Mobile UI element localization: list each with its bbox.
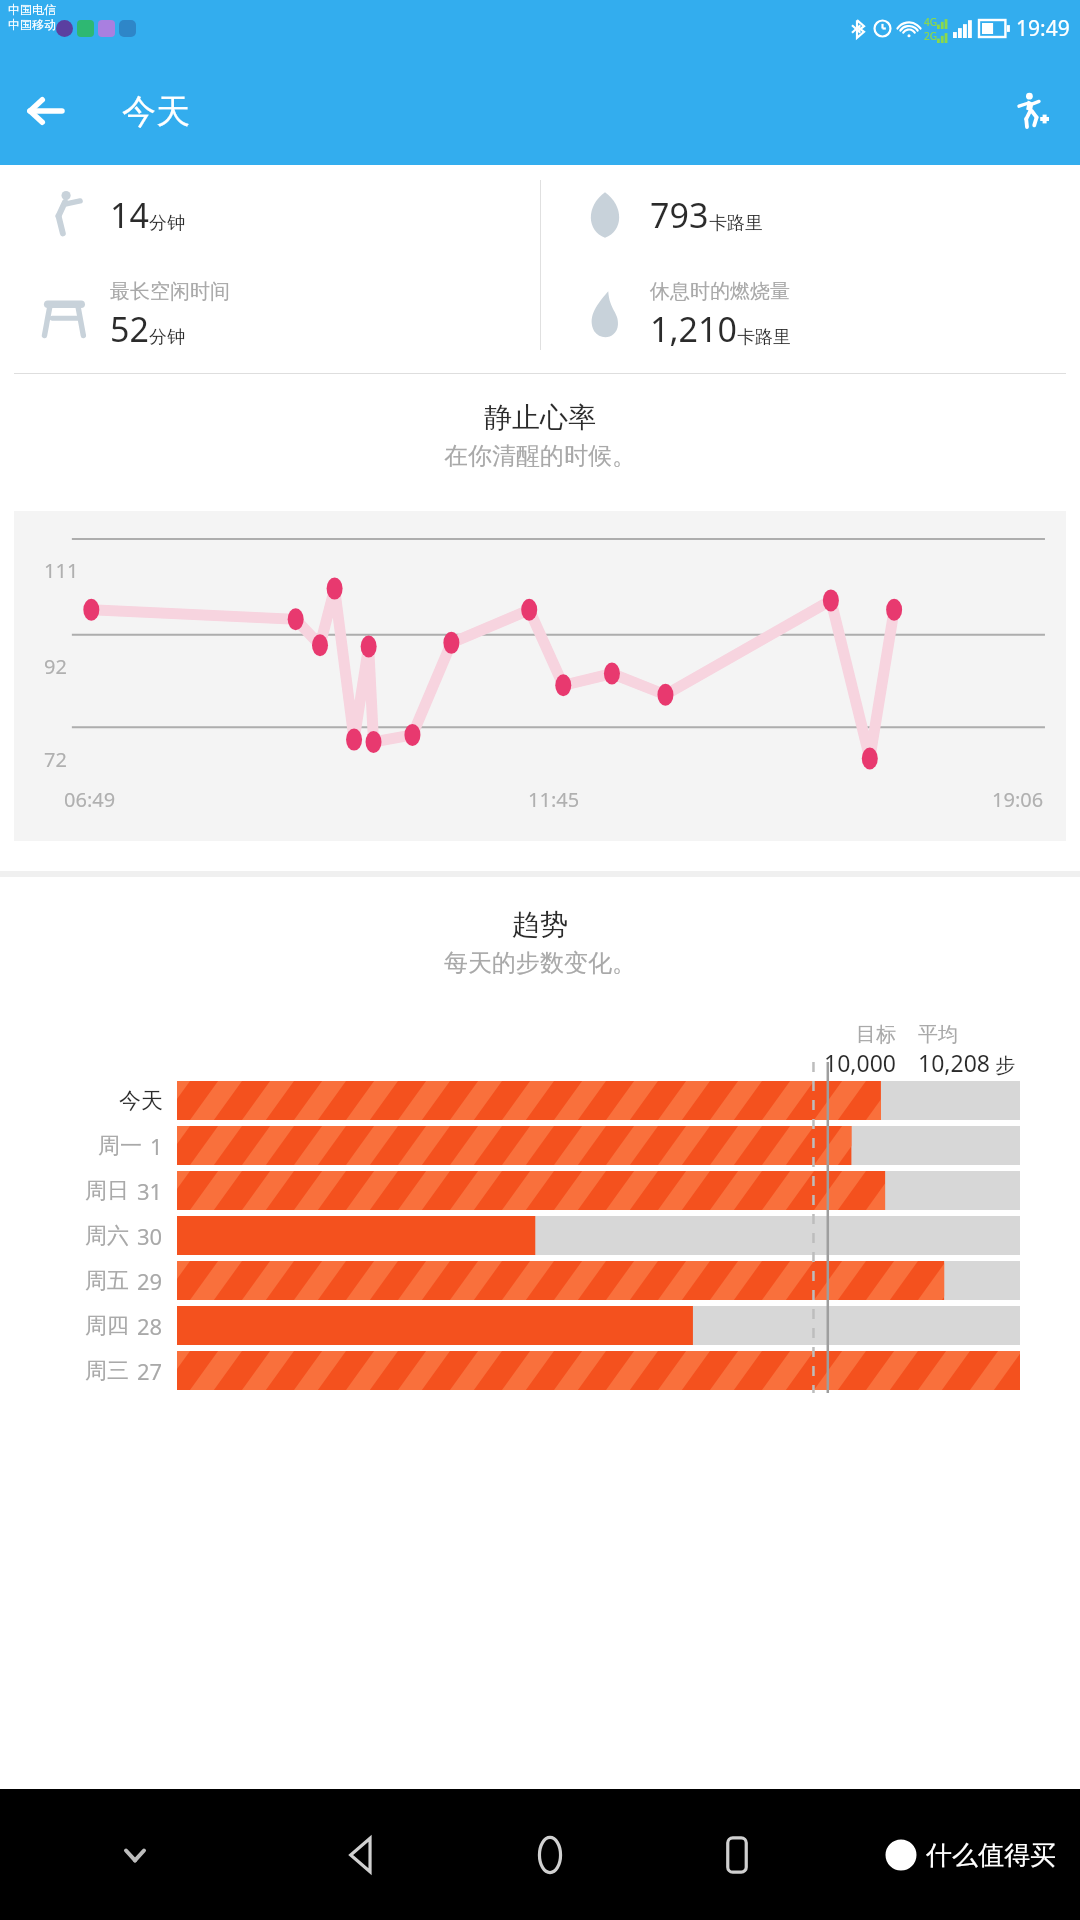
staticText: 92 bbox=[44, 653, 67, 680]
staticText: 周五 bbox=[85, 1267, 129, 1295]
staticText: 111 bbox=[44, 557, 79, 584]
staticText: 52 bbox=[110, 306, 149, 352]
staticText: 今天 bbox=[122, 90, 190, 133]
button[interactable]: Add activity bbox=[1000, 80, 1062, 142]
staticText: 目标 bbox=[856, 1022, 896, 1047]
staticText: 周三 bbox=[85, 1357, 129, 1385]
staticText: 31 bbox=[137, 1176, 163, 1206]
staticText: 趋势 bbox=[0, 907, 1080, 942]
staticText: 11:45 bbox=[528, 786, 580, 813]
staticText: 周四 bbox=[85, 1312, 129, 1340]
staticText: 06:49 bbox=[64, 786, 116, 813]
staticText: 28 bbox=[137, 1311, 163, 1341]
staticText: 卡路里 bbox=[709, 212, 763, 235]
staticText: 10,000 bbox=[824, 1047, 896, 1078]
staticText: 卡路里 bbox=[737, 326, 791, 349]
staticText: 在你清醒的时候。 bbox=[0, 441, 1080, 471]
staticText: 分钟 bbox=[149, 212, 185, 235]
staticText: 每天的步数变化。 bbox=[0, 948, 1080, 978]
staticText: 最长空闲时间 bbox=[110, 279, 230, 304]
staticText: 2G bbox=[924, 29, 937, 43]
staticText: 中国移动 bbox=[8, 17, 56, 32]
button[interactable]: Back bbox=[14, 80, 76, 142]
staticText: 30 bbox=[137, 1221, 163, 1251]
button[interactable]: 周六 bbox=[0, 1213, 1080, 1258]
staticText: 72 bbox=[44, 746, 67, 773]
staticText: 19:06 bbox=[992, 786, 1044, 813]
staticText: 1 bbox=[150, 1131, 163, 1161]
staticText: 中国电信 bbox=[8, 2, 56, 17]
staticText: 4G bbox=[924, 15, 937, 29]
button[interactable]: 周三 bbox=[0, 1348, 1080, 1393]
button[interactable]: Recents bbox=[643, 1789, 830, 1920]
staticText: 步 bbox=[990, 1051, 1016, 1078]
button[interactable]: Home bbox=[456, 1789, 643, 1920]
button[interactable]: 周日 bbox=[0, 1168, 1080, 1213]
staticText: 周日 bbox=[85, 1177, 129, 1205]
staticText: 14 bbox=[110, 192, 149, 238]
staticText: 10,208 bbox=[918, 1047, 990, 1078]
staticText: 休息时的燃烧量 bbox=[650, 279, 790, 304]
staticText: 今天 bbox=[119, 1087, 163, 1115]
button[interactable]: Hide bbox=[0, 1789, 270, 1920]
staticText: 平均 bbox=[918, 1022, 958, 1047]
staticText: 分钟 bbox=[149, 326, 185, 349]
staticText: 19:49 bbox=[1016, 14, 1070, 43]
staticText: 周六 bbox=[85, 1222, 129, 1250]
staticText: 793 bbox=[650, 192, 709, 238]
staticText: 什么值得买 bbox=[926, 1839, 1056, 1872]
button[interactable]: 今天 bbox=[0, 1078, 1080, 1123]
button[interactable]: 周五 bbox=[0, 1258, 1080, 1303]
button[interactable]: 周四 bbox=[0, 1303, 1080, 1348]
staticText: 29 bbox=[137, 1266, 163, 1296]
staticText: 周一 bbox=[98, 1132, 142, 1160]
staticText: 27 bbox=[137, 1356, 163, 1386]
staticText: 静止心率 bbox=[0, 400, 1080, 435]
button[interactable]: 周一 bbox=[0, 1123, 1080, 1168]
staticText: 1,210 bbox=[650, 306, 737, 352]
button[interactable]: Back bbox=[270, 1789, 456, 1920]
